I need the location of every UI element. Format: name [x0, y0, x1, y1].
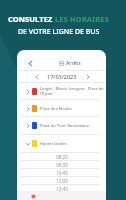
button[interactable]: 08:20 — [17, 153, 106, 160]
staticText: CONSULTEZ — [8, 14, 55, 24]
button[interactable]: 09:35 — [17, 161, 106, 168]
button[interactable]: Place des Moulin — [17, 100, 106, 116]
staticText: l'Église — [40, 91, 53, 96]
staticText: Place des Moulin — [40, 106, 72, 111]
staticText: 17/03/2023 — [47, 73, 77, 80]
staticText: 08:20 — [56, 154, 68, 160]
staticText: Arrêts — [66, 60, 81, 67]
staticText: 12:05 — [56, 178, 68, 184]
button[interactable]: 17/03/2023 — [17, 71, 106, 82]
staticText: Hautes landes — [40, 141, 67, 146]
staticText: DE VOTRE LIGNE DE BUS — [18, 27, 100, 37]
button[interactable]: Home — [29, 192, 37, 200]
staticText: 09:35 — [56, 162, 68, 168]
staticText: 10:45 — [56, 170, 68, 176]
staticText: Lingés - Mairie Longues - Place de — [40, 86, 104, 91]
button[interactable]: 12:05 — [17, 177, 106, 184]
button[interactable]: Back — [25, 58, 36, 69]
button[interactable]: Place du Pont Varnoveaux — [17, 117, 106, 134]
staticText: Place du Pont Varnoveaux — [40, 123, 89, 128]
staticText: 13:40 — [56, 186, 68, 192]
button[interactable]: Lingés - Mairie Longues - Place de — [17, 83, 106, 99]
button[interactable]: 13:40 — [17, 185, 106, 192]
staticText: LES HORAIRES — [55, 14, 109, 24]
button[interactable]: Hautes landes — [17, 135, 106, 152]
button[interactable]: 10:45 — [17, 169, 106, 176]
